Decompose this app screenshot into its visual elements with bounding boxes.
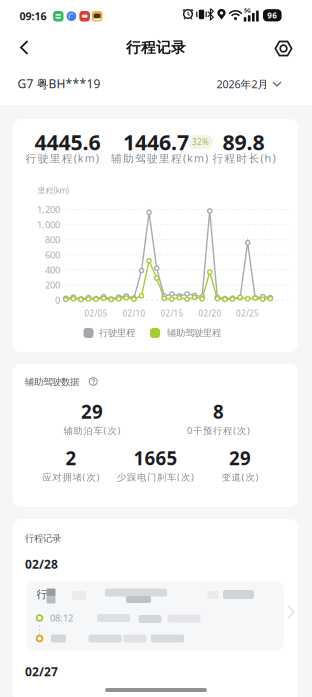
- staticText: 02/10: [122, 308, 145, 319]
- staticText: 600: [45, 249, 60, 261]
- staticText: 0干预行程(次): [187, 424, 250, 437]
- staticText: 89.8: [222, 128, 264, 156]
- staticText: 200: [45, 279, 60, 291]
- staticText: 变道(次): [221, 471, 258, 483]
- staticText: 09:16: [19, 9, 46, 23]
- staticText: 辅助驾驶里程(km): [111, 151, 208, 165]
- staticText: 2: [65, 446, 76, 470]
- staticText: 29: [229, 446, 251, 470]
- staticText: 少踩电门刹车(次): [117, 471, 194, 483]
- staticText: 辅助驾驶数据: [25, 376, 79, 388]
- button[interactable]: 辅助驾驶数据说明: [88, 376, 98, 386]
- staticText: 4445.6: [34, 128, 100, 156]
- staticText: 行驶里程(km): [26, 151, 99, 165]
- staticText: 1446.7: [123, 128, 189, 156]
- staticText: 辅助驾驶里程: [167, 327, 221, 339]
- staticText: G7 粤BH***19: [17, 75, 100, 91]
- staticText: 96: [267, 10, 277, 21]
- staticText: 02/20: [198, 308, 221, 319]
- staticText: 里程(km): [37, 185, 68, 196]
- staticText: 02/05: [84, 308, 107, 319]
- button[interactable]: 2026年2月: [216, 77, 281, 91]
- button[interactable]: G7 粤BH***19: [17, 75, 100, 91]
- staticText: 02/27: [25, 663, 58, 679]
- staticText: 800: [45, 233, 60, 246]
- staticText: 2026年2月: [216, 77, 268, 91]
- button[interactable]: 返回: [10, 38, 38, 57]
- staticText: 02/15: [160, 308, 183, 319]
- staticText: 辅助泊车(次): [63, 424, 120, 437]
- staticText: 行程记录: [25, 533, 61, 544]
- staticText: 行驶里程: [99, 327, 135, 339]
- staticText: 应对拥堵(次): [42, 471, 99, 483]
- staticText: 29: [81, 399, 103, 424]
- staticText: 行程时长(h): [212, 151, 275, 165]
- staticText: 行程记录: [126, 38, 186, 56]
- staticText: 行: [36, 588, 47, 601]
- staticText: 8: [213, 399, 224, 424]
- staticText: 08:12: [50, 612, 73, 624]
- staticText: 1,200: [37, 203, 60, 216]
- staticText: 02/28: [25, 556, 58, 572]
- button[interactable]: 行: [26, 581, 284, 651]
- staticText: 400: [45, 264, 60, 276]
- staticText: 02/25: [236, 308, 259, 319]
- staticText: 1665: [133, 446, 177, 470]
- staticText: 0: [55, 294, 60, 306]
- staticText: 5G: [244, 7, 251, 14]
- button[interactable]: 设置: [273, 38, 293, 58]
- staticText: 32%: [192, 137, 209, 147]
- staticText: 1,000: [37, 218, 60, 231]
